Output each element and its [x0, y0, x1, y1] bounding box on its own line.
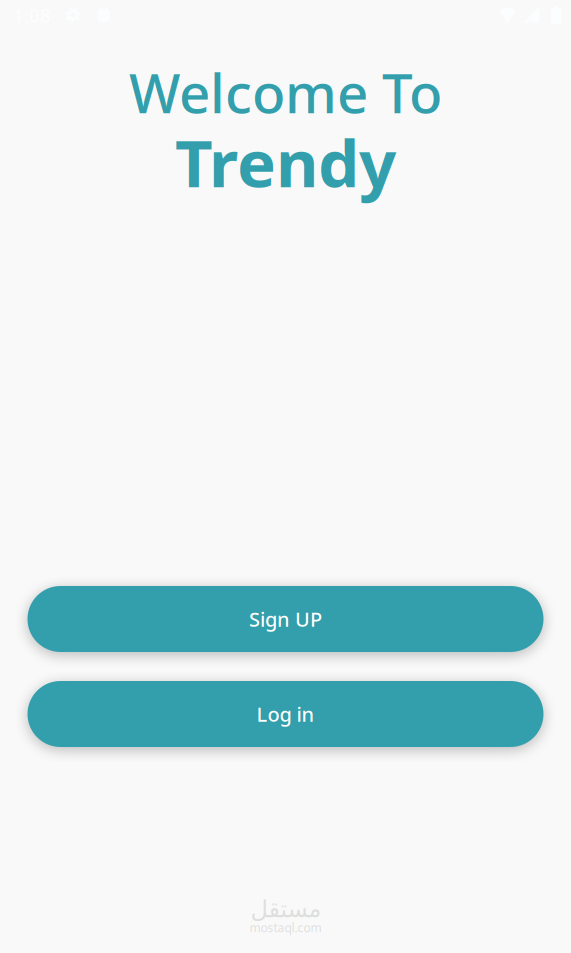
staticText: Trendy — [175, 119, 396, 205]
button[interactable]: Sign UP — [27, 586, 543, 652]
staticText: Welcome To — [129, 56, 442, 128]
staticText: مستقل — [250, 895, 321, 923]
staticText: Log in — [256, 701, 314, 727]
staticText: mostaql.com — [249, 919, 321, 935]
button[interactable]: Log in — [27, 681, 543, 747]
staticText: Sign UP — [249, 606, 322, 632]
